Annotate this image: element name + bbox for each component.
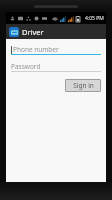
staticText: Phone number bbox=[13, 45, 59, 54]
staticText: Password bbox=[11, 62, 41, 71]
staticText: Sign in bbox=[73, 81, 94, 90]
staticText: 4:05 PM bbox=[85, 15, 104, 22]
button[interactable]: Sign in bbox=[65, 79, 101, 92]
button[interactable]: Driver bbox=[6, 24, 106, 39]
button[interactable]: Password bbox=[11, 61, 101, 72]
staticText: Driver bbox=[22, 27, 44, 37]
button[interactable]: Phone number bbox=[11, 44, 101, 55]
